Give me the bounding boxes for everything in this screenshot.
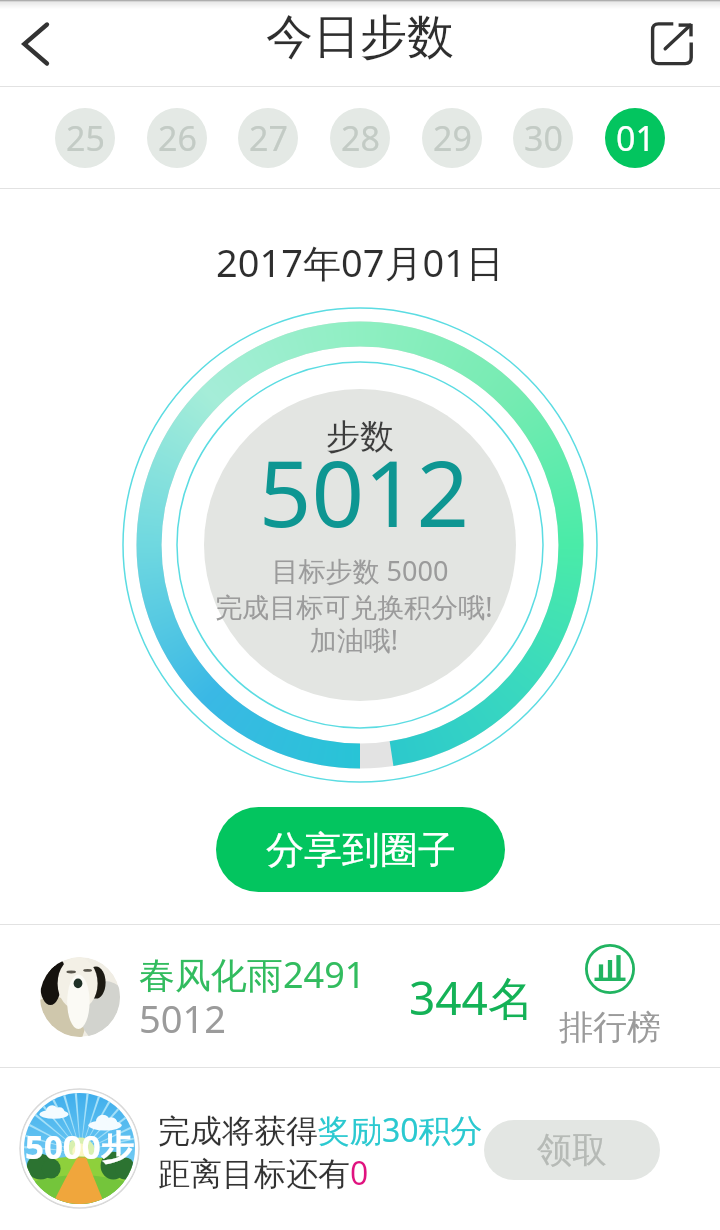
button[interactable]: 01: [605, 108, 665, 168]
button[interactable]: 春风化雨2491 5012 344名: [20, 926, 540, 1067]
staticText: 今日步数: [266, 8, 454, 67]
button[interactable]: 29: [422, 108, 482, 168]
staticText: 27: [249, 115, 288, 161]
staticText: 30: [524, 115, 563, 161]
staticText: 距离目标还有0: [158, 1151, 369, 1195]
staticText: 春风化雨2491: [139, 950, 366, 999]
staticText: 01: [616, 115, 655, 161]
staticText: 28: [341, 115, 380, 161]
staticText: 步数: [0, 415, 720, 458]
staticText: 完成将获得奖励30积分: [158, 1108, 483, 1152]
staticText: 领取: [537, 1128, 607, 1172]
button[interactable]: 25: [55, 108, 115, 168]
staticText: 排行榜: [559, 1006, 661, 1049]
button[interactable]: 30: [513, 108, 573, 168]
button[interactable]: Back: [0, 0, 72, 87]
staticText: 5012: [4, 429, 720, 554]
staticText: 5012: [139, 992, 226, 1044]
staticText: 分享到圈子: [266, 826, 456, 874]
button[interactable]: 分享到圈子: [216, 807, 505, 892]
staticText: 26: [158, 115, 197, 161]
button[interactable]: 28: [330, 108, 390, 168]
button[interactable]: 27: [238, 108, 298, 168]
button[interactable]: 排行榜: [549, 944, 670, 1049]
staticText: 2017年07月01日: [0, 236, 720, 288]
staticText: 目标步数 5000: [0, 552, 720, 589]
button[interactable]: 领取: [484, 1120, 660, 1180]
staticText: 加油哦!: [0, 621, 714, 658]
staticText: 29: [433, 115, 472, 161]
button[interactable]: 26: [147, 108, 207, 168]
staticText: 5000步: [25, 1124, 134, 1169]
staticText: 完成目标可兑换积分哦!: [0, 588, 714, 625]
button[interactable]: Share: [630, 0, 720, 87]
staticText: 344名: [409, 966, 534, 1029]
button[interactable]: 头像: [40, 957, 120, 1037]
staticText: 25: [66, 115, 105, 161]
